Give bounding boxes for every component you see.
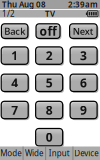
button[interactable]: Wide xyxy=(23,146,45,160)
button[interactable]: Device xyxy=(73,146,100,160)
staticText: Wide xyxy=(25,148,44,158)
staticText: 3 xyxy=(80,48,87,63)
staticText: 4 xyxy=(11,75,18,91)
staticText: 0 xyxy=(46,129,53,145)
staticText: TV xyxy=(45,8,55,19)
button[interactable]: 5 xyxy=(36,74,64,93)
button[interactable]: 3 xyxy=(70,47,98,66)
button[interactable]: 0 xyxy=(36,128,64,147)
staticText: 1/2 xyxy=(2,8,15,19)
button[interactable]: 4 xyxy=(1,74,30,93)
staticText: Input xyxy=(49,148,70,158)
button[interactable]: off xyxy=(36,24,61,40)
staticText: Mode xyxy=(0,148,22,158)
staticText: Back xyxy=(4,25,25,37)
staticText: Thu Aug 08 xyxy=(2,0,46,10)
staticText: 5 xyxy=(46,75,53,91)
button[interactable]: 9 xyxy=(70,101,98,120)
button[interactable]: 1 xyxy=(1,47,30,66)
staticText: 8 xyxy=(46,102,53,118)
staticText: 9 xyxy=(80,102,87,118)
button[interactable]: 6 xyxy=(70,74,98,93)
staticText: off xyxy=(39,23,56,39)
staticText: 2 xyxy=(46,48,53,63)
staticText: 1 xyxy=(11,48,18,63)
button[interactable]: 8 xyxy=(36,101,64,120)
button[interactable]: Mode xyxy=(0,146,23,160)
staticText: Next xyxy=(73,25,94,37)
button[interactable]: 7 xyxy=(1,101,30,120)
button[interactable]: Back xyxy=(1,24,29,40)
staticText: 7 xyxy=(11,102,18,118)
staticText: Device xyxy=(74,148,99,158)
staticText: 6 xyxy=(80,75,87,91)
button[interactable]: 2 xyxy=(36,47,64,66)
button[interactable]: Next xyxy=(70,24,98,40)
button[interactable]: Input xyxy=(46,146,73,160)
staticText: 2:39am xyxy=(68,0,98,10)
